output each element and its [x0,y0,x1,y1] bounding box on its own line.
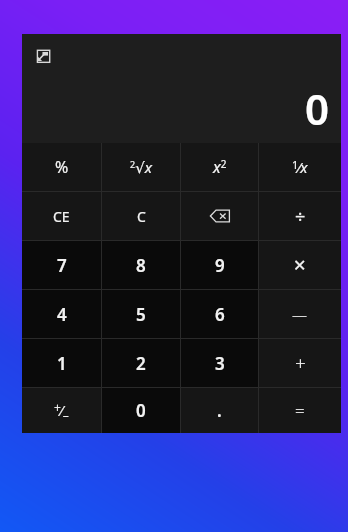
staticText: = [295,399,305,422]
staticText: 0 [305,80,330,137]
button[interactable]: 6 [181,290,258,338]
staticText: + [295,350,306,376]
staticText: +⁄– [54,399,69,423]
button[interactable]: Equals [259,388,341,433]
staticText: 7 [57,254,67,277]
staticText: 8 [136,254,146,277]
staticText: . [217,399,222,422]
staticText: 0 [136,399,146,422]
staticText: 4 [57,303,67,326]
button[interactable]: Positive negative [22,388,101,433]
staticText: C [137,207,146,226]
button[interactable]: 1 [22,339,101,387]
button[interactable]: Square root [102,143,180,191]
staticText: ÷ [295,204,306,229]
button[interactable]: 9 [181,241,258,289]
staticText: 1⁄x [292,157,308,177]
button[interactable]: Clear entry [22,192,101,240]
button[interactable]: Squared [181,143,258,191]
button[interactable]: 8 [102,241,180,289]
staticText: 2 [136,352,146,375]
staticText: 3 [215,352,225,375]
button[interactable]: Add [259,339,341,387]
staticText: 5 [136,303,146,326]
button[interactable]: Clear [102,192,180,240]
button[interactable]: Keep on top [30,44,56,70]
button[interactable]: Decimal point [181,388,258,433]
button[interactable]: Percent [22,143,101,191]
button[interactable]: Divide [259,192,341,240]
button[interactable]: 2 [102,339,180,387]
staticText: ✕ [293,256,307,275]
staticText: % [55,156,69,178]
staticText: 9 [215,254,225,277]
button[interactable]: Backspace [181,192,258,240]
button[interactable]: 3 [181,339,258,387]
button[interactable]: 5 [102,290,180,338]
button[interactable]: Subtract [259,290,341,338]
button[interactable]: 7 [22,241,101,289]
staticText: CE [53,207,70,226]
button[interactable]: Multiply [259,241,341,289]
button[interactable]: 4 [22,290,101,338]
staticText: 2√x [130,157,152,177]
button[interactable]: 0 [102,388,180,433]
staticText: x2 [213,156,227,178]
staticText: 6 [215,303,225,326]
staticText: — [292,304,308,324]
staticText: 1 [57,352,67,375]
button[interactable]: Reciprocal [259,143,341,191]
